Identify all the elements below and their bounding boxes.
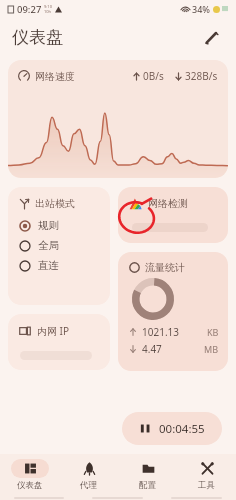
button[interactable]: 仪表盘 [0,454,59,496]
button[interactable]: 规则 [19,219,110,232]
staticText: 09:27 [17,3,42,16]
staticText: 0B/s [143,69,164,83]
button[interactable]: Pause [122,412,222,445]
staticText: MB [204,343,219,355]
staticText: 10h [44,9,52,14]
staticText: 仪表盘 [12,27,63,48]
button[interactable]: 代理 [59,454,118,496]
staticText: 网络检测 [148,197,188,210]
staticText: 代理 [80,480,97,491]
staticText: 直连 [38,259,59,272]
button[interactable]: 出站模式 [8,187,110,305]
button[interactable]: 全局 [19,239,110,252]
button[interactable]: 内网 IP [8,314,110,370]
staticText: 仪表盘 [17,480,43,491]
staticText: 328B/s [185,69,218,83]
button[interactable]: 网络速度 [8,60,228,178]
staticText: 4.47 [142,342,162,356]
button[interactable]: 工具 [177,454,236,496]
button[interactable]: 流量统计 [118,252,228,371]
staticText: 网络速度 [35,70,75,83]
staticText: KB [207,326,219,338]
staticText: 规则 [38,219,59,232]
staticText: 工具 [198,480,215,491]
button[interactable]: 网络检测 [118,187,228,243]
staticText: 配置 [139,480,156,491]
staticText: 34% [192,3,210,15]
staticText: 00:04:55 [159,421,205,437]
staticText: 9:10 [44,4,52,9]
button[interactable]: Edit [198,24,224,50]
staticText: 内网 IP [37,324,70,338]
staticText: 出站模式 [35,197,75,210]
button[interactable]: 配置 [118,454,177,496]
button[interactable]: 直连 [19,259,110,272]
staticText: 全局 [38,239,59,252]
staticText: 1021.13 [142,325,179,339]
staticText: 流量统计 [145,261,185,274]
